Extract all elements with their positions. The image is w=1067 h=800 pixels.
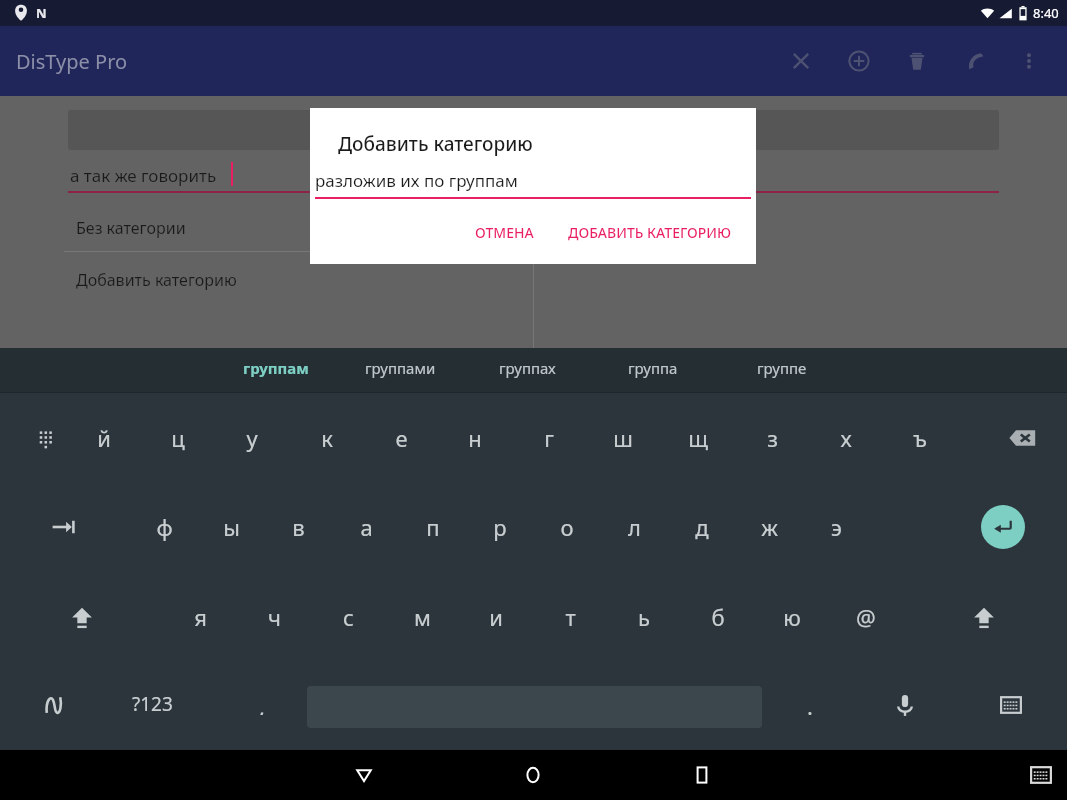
button[interactable]: ж: [743, 503, 795, 551]
button[interactable]: Home: [518, 760, 548, 790]
button[interactable]: More options: [1013, 45, 1045, 77]
staticText: р: [493, 512, 507, 542]
button[interactable]: ь: [618, 593, 670, 641]
button[interactable]: н: [449, 414, 501, 462]
staticText: Добавить категорию: [338, 131, 533, 157]
staticText: з: [767, 423, 778, 453]
button[interactable]: щ: [672, 414, 724, 462]
staticText: N: [36, 4, 47, 22]
button[interactable]: ш: [597, 414, 649, 462]
staticText: я: [194, 602, 207, 632]
button[interactable]: й: [78, 414, 130, 462]
button[interactable]: ъ: [894, 414, 946, 462]
button[interactable]: х: [820, 414, 872, 462]
button[interactable]: группах: [499, 358, 556, 378]
staticText: г: [544, 423, 554, 453]
button[interactable]: [68, 110, 999, 150]
staticText: ДОБАВИТЬ КАТЕГОРИЮ: [568, 223, 732, 242]
button[interactable]: г: [523, 414, 575, 462]
button[interactable]: р: [474, 503, 526, 551]
button[interactable]: к: [301, 414, 353, 462]
staticText: ъ: [913, 423, 927, 453]
staticText: ы: [223, 512, 240, 542]
staticText: т: [565, 602, 576, 632]
button[interactable]: ч: [248, 593, 300, 641]
button[interactable]: з: [746, 414, 798, 462]
button[interactable]: э: [810, 503, 862, 551]
button[interactable]: т: [544, 593, 596, 641]
button[interactable]: ОТМЕНА: [465, 215, 544, 250]
staticText: л: [628, 512, 641, 542]
button[interactable]: б: [692, 593, 744, 641]
button[interactable]: Handwriting: [30, 681, 78, 729]
button[interactable]: .: [798, 691, 822, 715]
staticText: группам: [243, 358, 309, 378]
button[interactable]: ы: [205, 503, 257, 551]
button[interactable]: ц: [152, 414, 204, 462]
button[interactable]: Enter: [981, 505, 1025, 549]
staticText: ОТМЕНА: [475, 223, 534, 242]
staticText: к: [321, 423, 333, 453]
button[interactable]: Shift: [58, 593, 106, 641]
button[interactable]: м: [396, 593, 448, 641]
button[interactable]: ?123: [132, 691, 173, 717]
staticText: а: [360, 512, 373, 542]
button[interactable]: Backspace: [998, 414, 1046, 462]
button[interactable]: Без категории: [76, 217, 186, 239]
button[interactable]: у: [226, 414, 278, 462]
staticText: .: [807, 691, 813, 715]
button[interactable]: Recents: [687, 760, 717, 790]
button[interactable]: а: [340, 503, 392, 551]
staticText: н: [468, 423, 482, 453]
button[interactable]: группами: [365, 358, 436, 378]
staticText: у: [246, 423, 258, 453]
button[interactable]: ф: [138, 503, 190, 551]
button[interactable]: Show keyboard: [1026, 760, 1056, 790]
button[interactable]: Tab: [39, 503, 87, 551]
button[interactable]: Keyboard layout: [21, 414, 69, 462]
staticText: а так же говорить: [70, 164, 217, 187]
button[interactable]: в: [272, 503, 324, 551]
staticText: группах: [499, 358, 556, 378]
staticText: ь: [638, 602, 650, 632]
button[interactable]: и: [470, 593, 522, 641]
button[interactable]: Add: [843, 45, 875, 77]
staticText: ж: [761, 512, 778, 542]
staticText: б: [711, 602, 725, 632]
button[interactable]: я: [174, 593, 226, 641]
button[interactable]: ю: [766, 593, 818, 641]
staticText: в: [292, 512, 305, 542]
button[interactable]: Hide keyboard: [987, 681, 1035, 729]
button[interactable]: группе: [757, 358, 807, 378]
button[interactable]: л: [608, 503, 660, 551]
staticText: ?123: [132, 691, 173, 717]
staticText: э: [831, 512, 842, 542]
staticText: щ: [688, 423, 708, 453]
button[interactable]: Voice input: [881, 681, 929, 729]
button[interactable]: о: [541, 503, 593, 551]
staticText: е: [395, 423, 408, 453]
staticText: х: [840, 423, 852, 453]
button[interactable]: Добавить категорию: [76, 269, 237, 291]
button[interactable]: Call: [959, 45, 991, 77]
button[interactable]: группам: [243, 358, 309, 378]
button[interactable]: ,: [250, 691, 274, 715]
button[interactable]: Close: [785, 45, 817, 77]
button[interactable]: Delete: [901, 45, 933, 77]
staticText: разложив их по группам: [315, 169, 518, 192]
button[interactable]: Back: [349, 760, 379, 790]
button[interactable]: ДОБАВИТЬ КАТЕГОРИЮ: [558, 215, 742, 250]
button[interactable]: е: [375, 414, 427, 462]
button[interactable]: группа: [628, 358, 678, 378]
staticText: 8:40: [1033, 4, 1059, 22]
staticText: @: [856, 602, 876, 632]
button[interactable]: Добавить высказывание: [558, 367, 750, 389]
button[interactable]: Shift: [960, 593, 1008, 641]
staticText: группе: [757, 358, 807, 378]
staticText: о: [560, 512, 574, 542]
button[interactable]: @: [840, 593, 892, 641]
button[interactable]: с: [322, 593, 374, 641]
button[interactable]: п: [407, 503, 459, 551]
button[interactable]: д: [676, 503, 728, 551]
